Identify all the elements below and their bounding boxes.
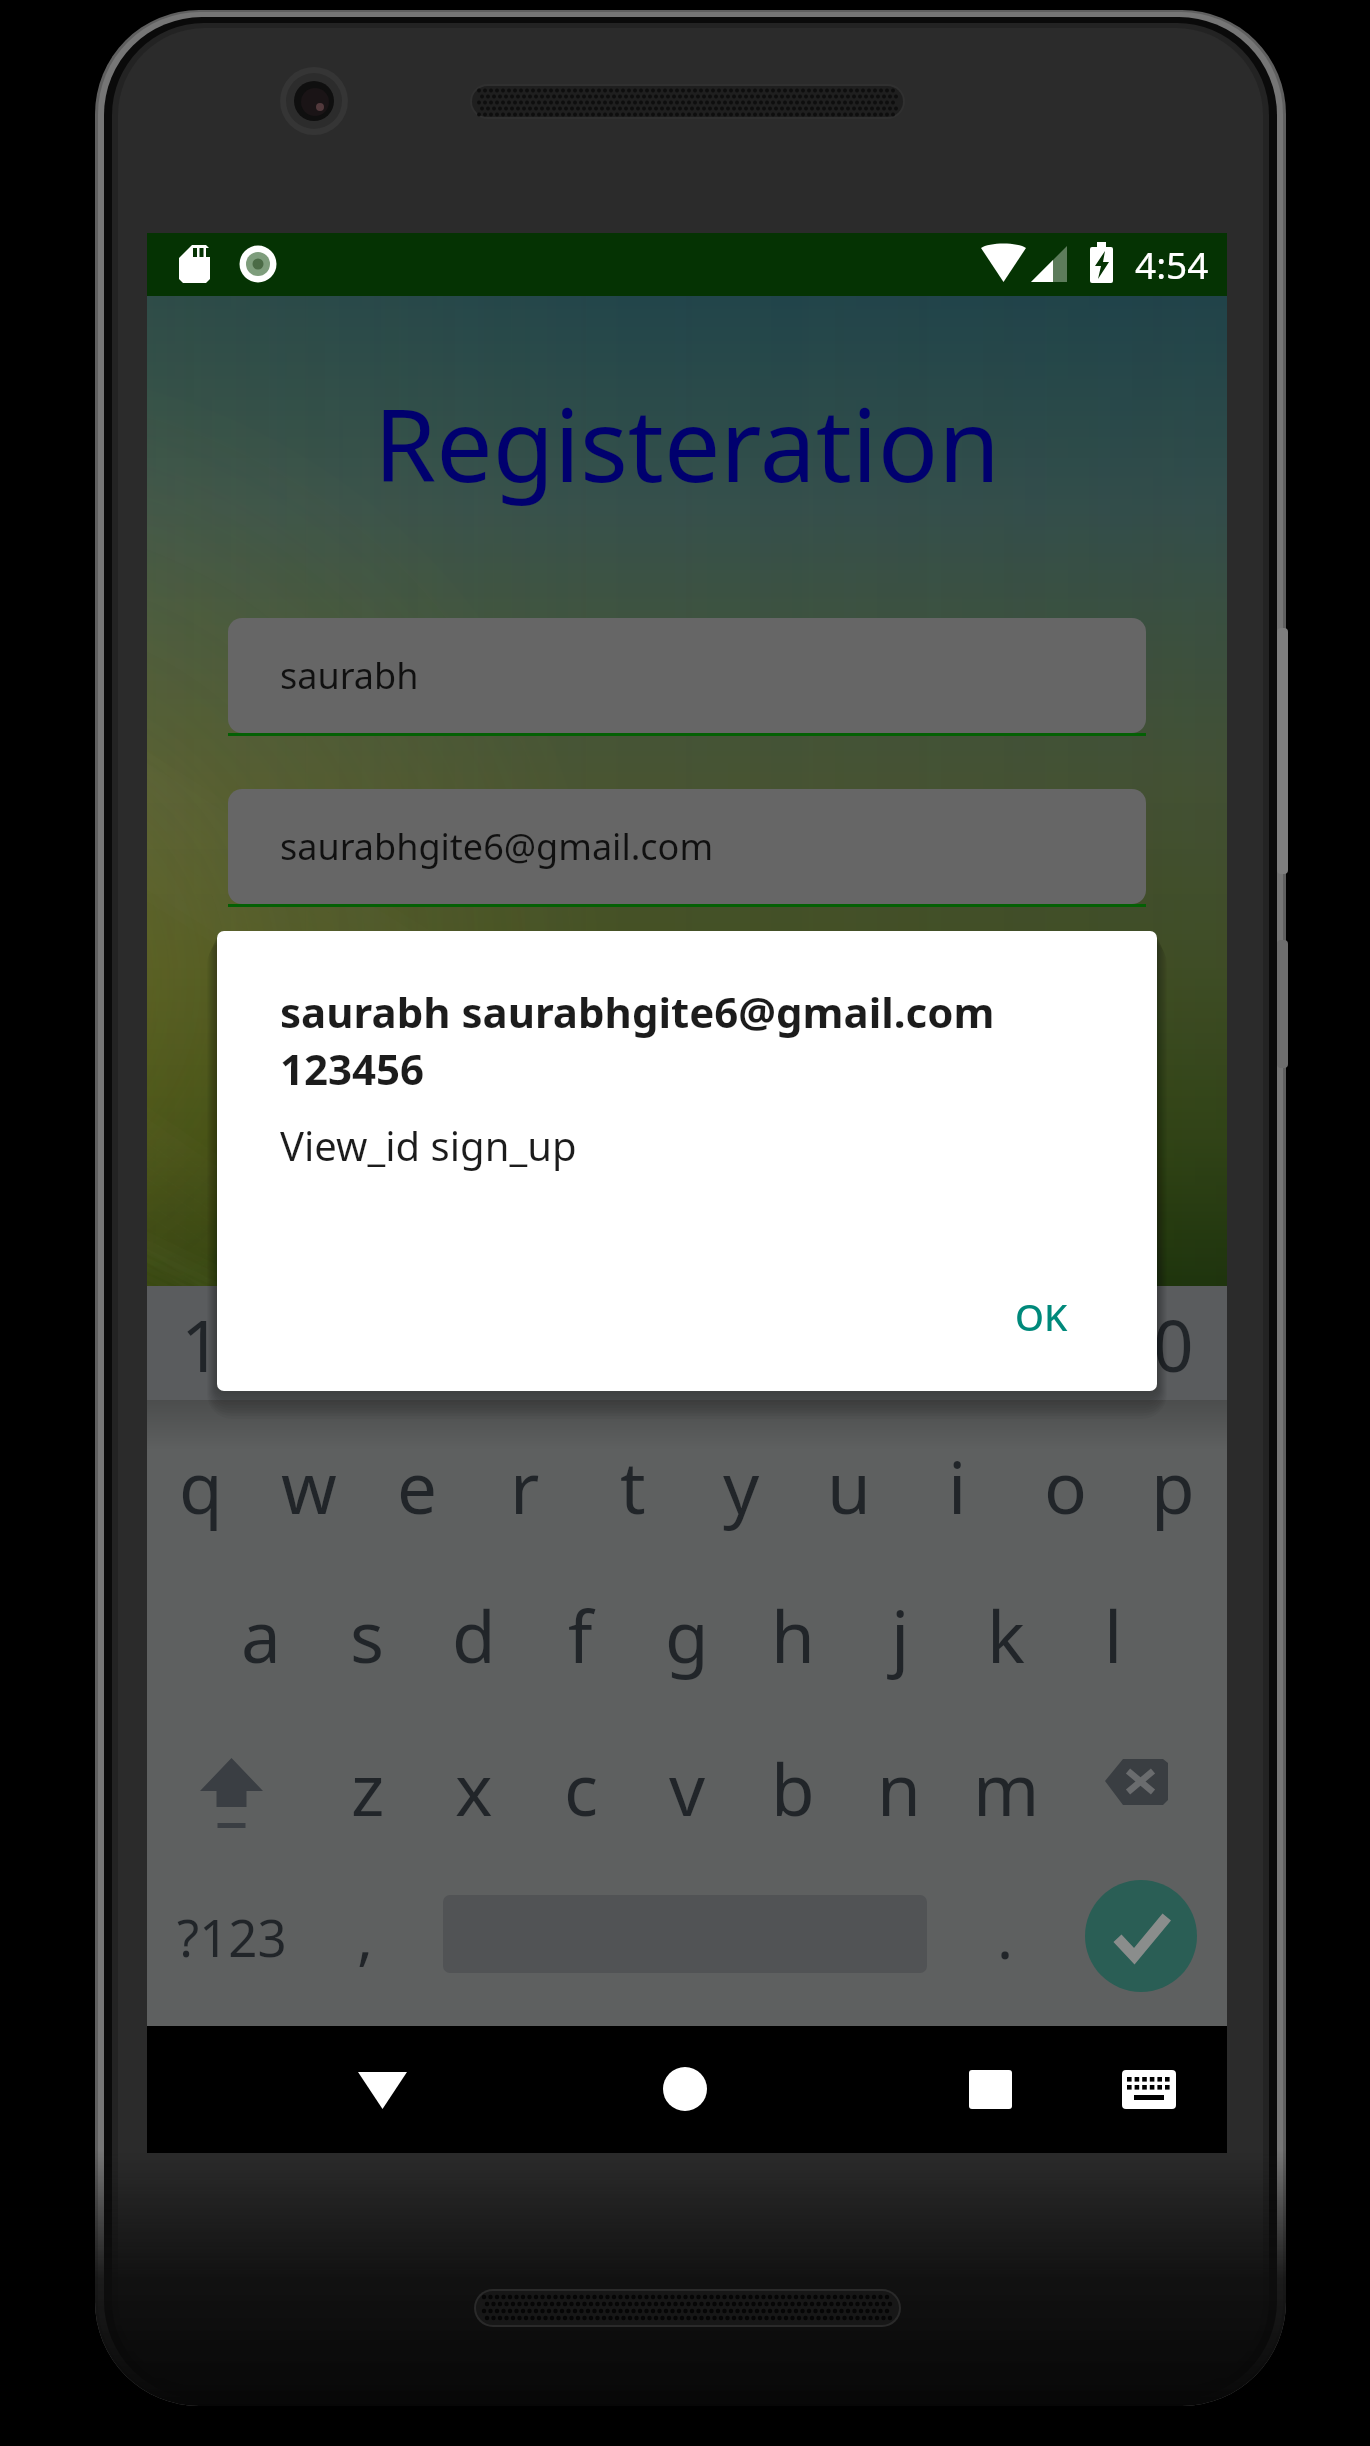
button[interactable]: OK (987, 1269, 1096, 1363)
button[interactable]: Back (323, 2026, 443, 2153)
button[interactable]: , (317, 1876, 413, 1996)
staticText: 2 (289, 1296, 330, 1393)
staticText: w (281, 1438, 337, 1535)
button[interactable]: 0 (1119, 1274, 1227, 1414)
staticText: s (350, 1587, 385, 1684)
staticText: k (987, 1587, 1025, 1684)
staticText: o (1044, 1438, 1087, 1535)
button[interactable]: q (147, 1416, 255, 1556)
staticText: 4 (505, 1296, 546, 1393)
staticText: saurabh saurabhgite6@gmail.com 123456 (280, 983, 995, 1097)
staticText: f (568, 1587, 593, 1684)
staticText: 1 (181, 1296, 222, 1393)
button[interactable]: 7 (795, 1274, 903, 1414)
button[interactable]: Home (625, 2026, 745, 2153)
staticText: 9 (1045, 1296, 1086, 1393)
button[interactable]: ?123 (147, 1876, 317, 1996)
staticText: b (771, 1740, 815, 1837)
button[interactable]: Backspace (1105, 1757, 1185, 1827)
staticText: p (1151, 1438, 1195, 1535)
staticText: ?123 (177, 1902, 287, 1971)
button[interactable]: m (953, 1718, 1059, 1858)
staticText: j (891, 1587, 910, 1684)
button[interactable]: 5 (579, 1274, 687, 1414)
button[interactable]: x (421, 1718, 527, 1858)
staticText: 6 (721, 1296, 762, 1393)
staticText: g (665, 1587, 709, 1684)
button[interactable]: b (740, 1718, 846, 1858)
button[interactable]: i (903, 1416, 1011, 1556)
button[interactable]: y (687, 1416, 795, 1556)
staticText: saurabhgite6@gmail.com (280, 822, 714, 871)
staticText: r (510, 1438, 540, 1535)
button[interactable]: l (1060, 1565, 1166, 1705)
button[interactable]: 2 (255, 1274, 363, 1414)
staticText: 7 (829, 1296, 870, 1393)
button[interactable]: h (740, 1565, 846, 1705)
button[interactable]: 1 (147, 1274, 255, 1414)
button[interactable]: p (1119, 1416, 1227, 1556)
button[interactable]: n (846, 1718, 952, 1858)
button[interactable]: s (314, 1565, 420, 1705)
button[interactable]: t (579, 1416, 687, 1556)
staticText: z (351, 1740, 385, 1837)
button[interactable]: saurabh (228, 618, 1146, 736)
button[interactable]: k (953, 1565, 1059, 1705)
button[interactable]: g (634, 1565, 740, 1705)
staticText: v (669, 1740, 706, 1837)
button[interactable]: r (471, 1416, 579, 1556)
button[interactable]: o (1011, 1416, 1119, 1556)
button[interactable]: j (847, 1565, 953, 1705)
staticText: n (877, 1740, 921, 1837)
staticText: Registeration (374, 375, 1000, 511)
button[interactable]: 8 (903, 1274, 1011, 1414)
staticText: , (357, 1895, 374, 1977)
button[interactable]: Shift (171, 1755, 293, 1845)
button[interactable]: u (795, 1416, 903, 1556)
staticText: 0 (1153, 1296, 1194, 1393)
staticText: y (723, 1438, 760, 1535)
staticText: m (973, 1740, 1040, 1837)
staticText: . (997, 1895, 1014, 1977)
button[interactable]: z (315, 1718, 421, 1858)
button[interactable]: e (363, 1416, 471, 1556)
staticText: 8 (937, 1296, 978, 1393)
staticText: t (620, 1438, 646, 1535)
staticText: i (948, 1438, 967, 1535)
button[interactable]: . (957, 1876, 1053, 1996)
button[interactable]: 9 (1011, 1274, 1119, 1414)
button[interactable]: saurabhgite6@gmail.com (228, 789, 1146, 907)
button[interactable]: c (528, 1718, 634, 1858)
button[interactable]: 3 (363, 1274, 471, 1414)
button[interactable]: Switch keyboard (1089, 2026, 1209, 2153)
staticText: e (397, 1438, 438, 1535)
staticText: q (179, 1438, 223, 1535)
button[interactable]: Recents (931, 2026, 1051, 2153)
button[interactable]: v (634, 1718, 740, 1858)
button[interactable]: f (527, 1565, 633, 1705)
staticText: c (564, 1740, 599, 1837)
staticText: OK (1015, 1291, 1068, 1341)
staticText: saurabh (280, 651, 419, 700)
staticText: l (1104, 1587, 1123, 1684)
button[interactable]: Enter (1085, 1880, 1197, 1992)
button[interactable]: w (255, 1416, 363, 1556)
button[interactable]: a (208, 1565, 314, 1705)
staticText: 3 (397, 1296, 438, 1393)
button[interactable]: d (421, 1565, 527, 1705)
staticText: u (827, 1438, 871, 1535)
staticText: h (771, 1587, 815, 1684)
staticText: x (455, 1740, 493, 1837)
staticText: d (452, 1587, 496, 1684)
staticText: 4:54 (1135, 239, 1209, 289)
staticText: View_id sign_up (280, 1118, 577, 1172)
button[interactable]: 4 (471, 1274, 579, 1414)
button[interactable]: 6 (687, 1274, 795, 1414)
staticText: 5 (613, 1296, 654, 1393)
staticText: a (241, 1587, 281, 1684)
